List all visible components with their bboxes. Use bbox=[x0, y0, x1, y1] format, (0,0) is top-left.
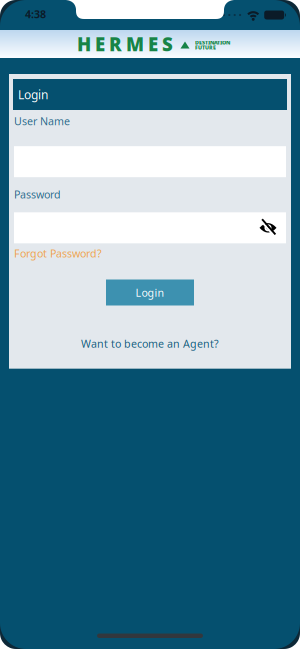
staticText: H E R M E S bbox=[77, 32, 173, 56]
staticText: Want to become an Agent? bbox=[81, 336, 219, 351]
button[interactable]: Password bbox=[14, 212, 286, 243]
staticText: DESTINATION bbox=[195, 39, 230, 46]
staticText: FUTURE bbox=[195, 44, 216, 51]
button[interactable]: Forgot Password? bbox=[14, 246, 102, 260]
staticText: User Name bbox=[14, 114, 70, 128]
button[interactable]: Login bbox=[106, 279, 194, 305]
staticText: 4:38 bbox=[25, 7, 46, 21]
staticText: Login bbox=[135, 285, 164, 300]
staticText: Forgot Password? bbox=[14, 246, 102, 260]
staticText: Login bbox=[18, 86, 48, 102]
staticText: Password bbox=[14, 187, 61, 201]
button[interactable]: Show password bbox=[259, 221, 286, 235]
button[interactable]: Want to become an Agent? bbox=[81, 336, 219, 351]
